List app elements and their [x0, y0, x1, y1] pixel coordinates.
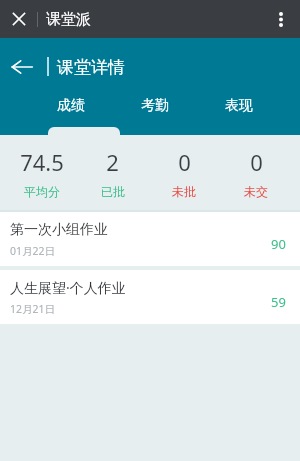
button[interactable]: More options — [262, 0, 300, 38]
staticText: 考勤 — [141, 97, 169, 115]
button[interactable]: 第一次小组作业 — [0, 212, 300, 266]
staticText: 第一次小组作业 — [10, 221, 108, 239]
staticText: 0 — [178, 147, 191, 177]
button[interactable]: 考勤 — [136, 95, 174, 117]
staticText: 未交 — [244, 184, 268, 199]
button[interactable]: 0 — [220, 147, 292, 199]
button[interactable]: Back — [0, 45, 44, 89]
staticText: 12月21日 — [10, 302, 56, 316]
button[interactable]: 74.5 — [6, 147, 77, 199]
staticText: 成绩 — [57, 97, 85, 115]
staticText: 0 — [250, 147, 263, 177]
staticText: 人生展望·个人作业 — [10, 278, 126, 297]
staticText: 平均分 — [24, 184, 60, 199]
button[interactable]: 2 — [77, 147, 148, 199]
staticText: 90 — [271, 235, 286, 253]
button[interactable]: 0 — [148, 147, 220, 199]
staticText: 课堂派 — [46, 10, 91, 29]
button[interactable]: 人生展望·个人作业 — [0, 270, 300, 324]
button[interactable]: Close — [0, 0, 38, 38]
staticText: 74.5 — [20, 147, 64, 177]
button[interactable]: 成绩 — [52, 95, 90, 117]
staticText: 59 — [271, 293, 286, 311]
staticText: 课堂详情 — [57, 57, 125, 78]
staticText: 2 — [106, 147, 119, 177]
staticText: 已批 — [101, 184, 125, 199]
staticText: 表现 — [225, 97, 253, 115]
staticText: 未批 — [172, 184, 196, 199]
staticText: 01月22日 — [10, 244, 56, 258]
button[interactable]: 表现 — [220, 95, 258, 117]
